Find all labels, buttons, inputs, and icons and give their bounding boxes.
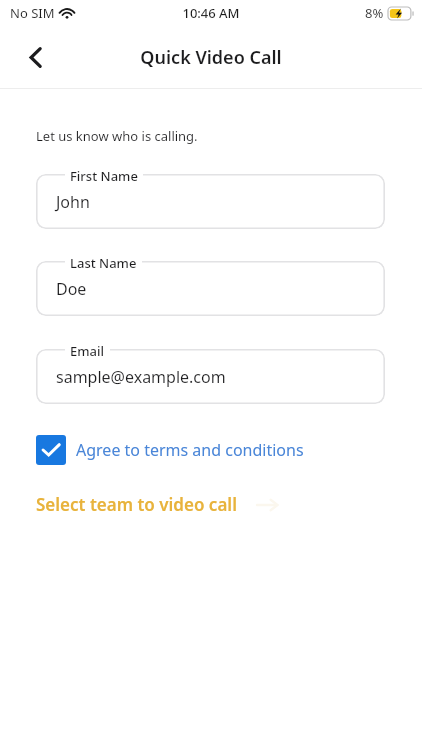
staticText: Agree to terms and conditions bbox=[76, 439, 304, 461]
staticText: John bbox=[56, 191, 90, 213]
staticText: Email bbox=[70, 342, 105, 360]
staticText: Quick Video Call bbox=[140, 45, 282, 70]
staticText: Select team to video call bbox=[36, 493, 237, 516]
button[interactable]: John bbox=[36, 174, 385, 229]
staticText: Let us know who is calling. bbox=[36, 127, 198, 145]
staticText: sample@example.com bbox=[56, 366, 226, 388]
staticText: No SIM bbox=[10, 4, 55, 22]
button[interactable]: Doe bbox=[36, 261, 385, 316]
staticText: 8% bbox=[365, 4, 384, 22]
button[interactable]: sample@example.com bbox=[36, 349, 385, 404]
button[interactable]: Back bbox=[18, 40, 52, 74]
staticText: First Name bbox=[70, 167, 138, 185]
staticText: 10:46 AM bbox=[182, 4, 240, 22]
staticText: Doe bbox=[56, 278, 87, 300]
other: Go bbox=[257, 497, 279, 513]
button[interactable]: Agree to terms and conditions bbox=[36, 435, 304, 465]
button[interactable]: Select team to video call bbox=[36, 493, 279, 516]
staticText: Last Name bbox=[70, 254, 137, 272]
